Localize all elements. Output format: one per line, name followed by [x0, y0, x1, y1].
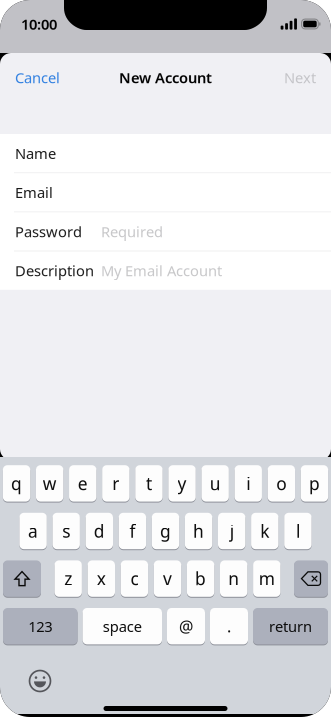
- button[interactable]: l: [284, 512, 312, 550]
- button[interactable]: m: [253, 560, 280, 597]
- button[interactable]: o: [268, 465, 295, 502]
- staticText: e: [78, 472, 88, 495]
- staticText: s: [62, 519, 70, 542]
- button[interactable]: q: [3, 465, 30, 502]
- staticText: j: [230, 519, 234, 542]
- staticText: a: [28, 519, 38, 542]
- staticText: k: [260, 519, 269, 542]
- staticText: b: [195, 567, 206, 590]
- button[interactable]: x: [88, 560, 115, 597]
- staticText: space: [103, 616, 142, 636]
- staticText: .: [227, 616, 231, 637]
- staticText: y: [177, 472, 186, 495]
- button[interactable]: Shift: [3, 560, 41, 597]
- button[interactable]: y: [168, 465, 196, 502]
- staticText: r: [112, 472, 119, 495]
- button[interactable]: d: [86, 512, 113, 550]
- button[interactable]: b: [187, 560, 214, 597]
- button[interactable]: Next: [274, 53, 331, 102]
- staticText: c: [130, 567, 138, 590]
- button[interactable]: i: [234, 465, 262, 502]
- staticText: Password: [15, 222, 82, 241]
- button[interactable]: z: [54, 560, 82, 597]
- staticText: Email: [15, 183, 53, 202]
- staticText: My Email Account: [101, 261, 222, 280]
- button[interactable]: k: [251, 512, 278, 550]
- button[interactable]: return: [253, 607, 328, 645]
- button[interactable]: Description: [0, 251, 331, 290]
- staticText: u: [210, 472, 221, 495]
- button[interactable]: u: [201, 465, 229, 502]
- button[interactable]: Name: [0, 134, 331, 172]
- staticText: Next: [284, 68, 316, 87]
- button[interactable]: c: [121, 560, 148, 597]
- staticText: o: [276, 472, 286, 495]
- staticText: m: [259, 567, 275, 590]
- staticText: t: [146, 472, 152, 495]
- staticText: New Account: [119, 68, 212, 87]
- staticText: v: [163, 567, 172, 590]
- button[interactable]: j: [218, 512, 245, 550]
- staticText: x: [97, 567, 106, 590]
- button[interactable]: space: [82, 607, 162, 645]
- button[interactable]: t: [135, 465, 163, 502]
- staticText: @: [179, 616, 193, 637]
- button[interactable]: p: [301, 465, 328, 502]
- button[interactable]: Password: [0, 212, 331, 251]
- staticText: z: [64, 567, 72, 590]
- button[interactable]: f: [119, 512, 146, 550]
- button[interactable]: n: [220, 560, 247, 597]
- staticText: 123: [28, 616, 52, 636]
- staticText: q: [11, 472, 22, 495]
- button[interactable]: s: [52, 512, 80, 550]
- staticText: Required: [101, 222, 163, 241]
- button[interactable]: e: [69, 465, 96, 502]
- button[interactable]: Cancel: [0, 53, 70, 102]
- button[interactable]: w: [36, 465, 63, 502]
- staticText: Name: [15, 143, 56, 163]
- staticText: d: [94, 519, 105, 542]
- staticText: g: [160, 519, 171, 542]
- button[interactable]: g: [152, 512, 179, 550]
- button[interactable]: a: [19, 512, 47, 550]
- button[interactable]: h: [185, 512, 212, 550]
- button[interactable]: .: [210, 607, 248, 645]
- staticText: i: [246, 472, 250, 495]
- staticText: l: [296, 519, 300, 542]
- staticText: w: [43, 472, 57, 495]
- staticText: 10:00: [21, 14, 57, 34]
- button[interactable]: v: [154, 560, 181, 597]
- staticText: h: [193, 519, 204, 542]
- button[interactable]: 123: [3, 607, 77, 645]
- staticText: f: [129, 519, 135, 542]
- staticText: return: [269, 616, 312, 636]
- staticText: Description: [15, 261, 94, 280]
- button[interactable]: Emoji: [0, 664, 68, 698]
- button[interactable]: Email: [0, 173, 331, 212]
- staticText: Cancel: [15, 68, 60, 87]
- staticText: n: [228, 567, 239, 590]
- button[interactable]: r: [102, 465, 130, 502]
- staticText: p: [309, 472, 320, 495]
- button[interactable]: Delete: [294, 560, 328, 597]
- button[interactable]: @: [167, 607, 205, 645]
